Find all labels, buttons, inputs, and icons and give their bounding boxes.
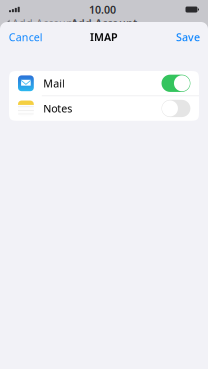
button[interactable]: Save — [175, 25, 201, 49]
staticText: Save — [176, 30, 200, 44]
button[interactable]: Add Account — [5, 16, 77, 30]
staticText: Mail — [43, 76, 65, 90]
staticText: Add Account — [71, 16, 137, 30]
staticText: IMAP — [90, 30, 118, 44]
staticText: Notes — [43, 101, 72, 116]
staticText: Add Account — [12, 16, 77, 30]
staticText: Cancel — [9, 30, 43, 44]
button[interactable]: Notes — [9, 96, 199, 121]
button[interactable]: Mail — [9, 71, 199, 96]
staticText: 10.00 — [89, 2, 116, 17]
button[interactable]: Cancel — [8, 25, 44, 49]
